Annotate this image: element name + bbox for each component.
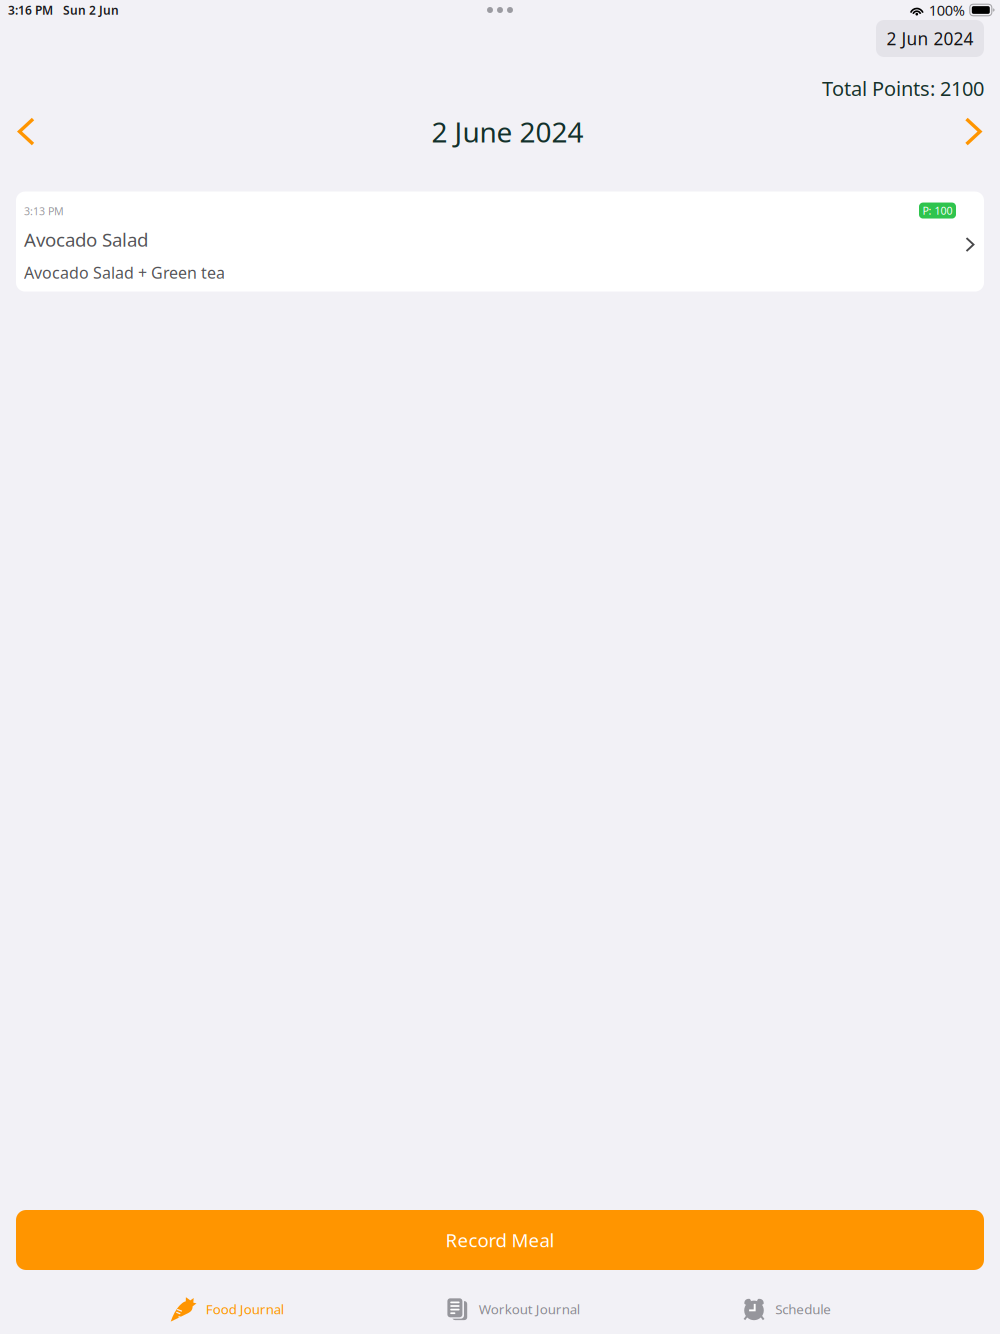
staticText: Sun 2 Jun [63, 2, 119, 18]
staticText: Record Meal [445, 1228, 554, 1252]
button[interactable]: Previous day [0, 110, 50, 154]
button[interactable]: 2 Jun 2024 [876, 20, 984, 57]
button[interactable]: Workout Journal [440, 1287, 586, 1331]
staticText: 3:16 PM [8, 2, 53, 18]
staticText: Avocado Salad [24, 227, 148, 252]
staticText: Avocado Salad + Green tea [24, 262, 225, 283]
staticText: 3:13 PM [24, 204, 64, 218]
staticText: Food Journal [206, 1300, 284, 1318]
staticText: Workout Journal [479, 1300, 580, 1318]
button[interactable]: P: 100 [16, 192, 984, 292]
staticText: 2 Jun 2024 [886, 27, 973, 50]
button[interactable]: Record Meal [16, 1210, 984, 1270]
button[interactable]: Schedule [736, 1287, 837, 1331]
staticText: Total Points: 2100 [822, 75, 984, 102]
staticText: P: 100 [922, 203, 952, 218]
staticText: Schedule [775, 1300, 831, 1318]
staticText: 100% [929, 0, 965, 20]
staticText: 2 June 2024 [431, 113, 583, 150]
button[interactable]: Food Journal [163, 1287, 290, 1331]
button[interactable]: Next day [950, 110, 1000, 154]
